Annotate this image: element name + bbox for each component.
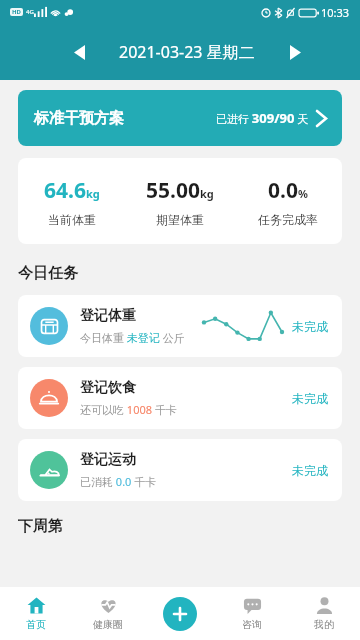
staticText: 登记体重 <box>80 307 136 325</box>
staticText: HD <box>12 8 21 16</box>
button[interactable]: 健康圈 <box>72 587 144 640</box>
staticText: 0.0% <box>268 176 308 205</box>
button[interactable]: 咨询 <box>216 587 288 640</box>
staticText: 已消耗 0.0 千卡 <box>80 474 157 489</box>
staticText: 4G <box>26 8 34 16</box>
staticText: 55.00kg <box>146 176 214 205</box>
staticText: 未完成 <box>292 319 328 334</box>
button[interactable]: 登记运动 <box>18 439 342 501</box>
staticText: 我的 <box>314 618 334 631</box>
button[interactable]: 我的 <box>288 587 360 640</box>
staticText: 下周第 <box>18 517 63 536</box>
staticText: 未完成 <box>292 463 328 478</box>
staticText: 未完成 <box>292 391 328 406</box>
staticText: 咨询 <box>242 618 262 631</box>
staticText: 2021-03-23 星期二 <box>119 41 255 63</box>
staticText: 登记饮食 <box>80 379 136 397</box>
staticText: 登记运动 <box>80 451 136 469</box>
staticText: 任务完成率 <box>258 212 318 227</box>
button[interactable]: Next day <box>278 35 312 69</box>
staticText: 标准干预方案 <box>34 109 124 128</box>
button[interactable]: 标准干预方案 <box>18 90 342 146</box>
staticText: 64.6kg <box>44 176 100 205</box>
staticText: 期望体重 <box>156 212 204 227</box>
staticText: 已进行 309/90 天 <box>216 109 309 127</box>
staticText: 当前体重 <box>48 212 96 227</box>
staticText: 健康圈 <box>93 618 123 631</box>
staticText: 今日体重 未登记 公斤 <box>80 330 185 345</box>
staticText: 还可以吃 1008 千卡 <box>80 402 177 417</box>
staticText: 10:33 <box>321 5 350 20</box>
staticText: 首页 <box>26 618 46 631</box>
button[interactable]: 登记饮食 <box>18 367 342 429</box>
button[interactable]: 登记体重 <box>18 295 342 357</box>
staticText: 今日任务 <box>18 264 78 283</box>
button[interactable]: Previous day <box>62 35 96 69</box>
button[interactable]: Add record <box>163 597 197 631</box>
button[interactable]: 首页 <box>0 587 72 640</box>
